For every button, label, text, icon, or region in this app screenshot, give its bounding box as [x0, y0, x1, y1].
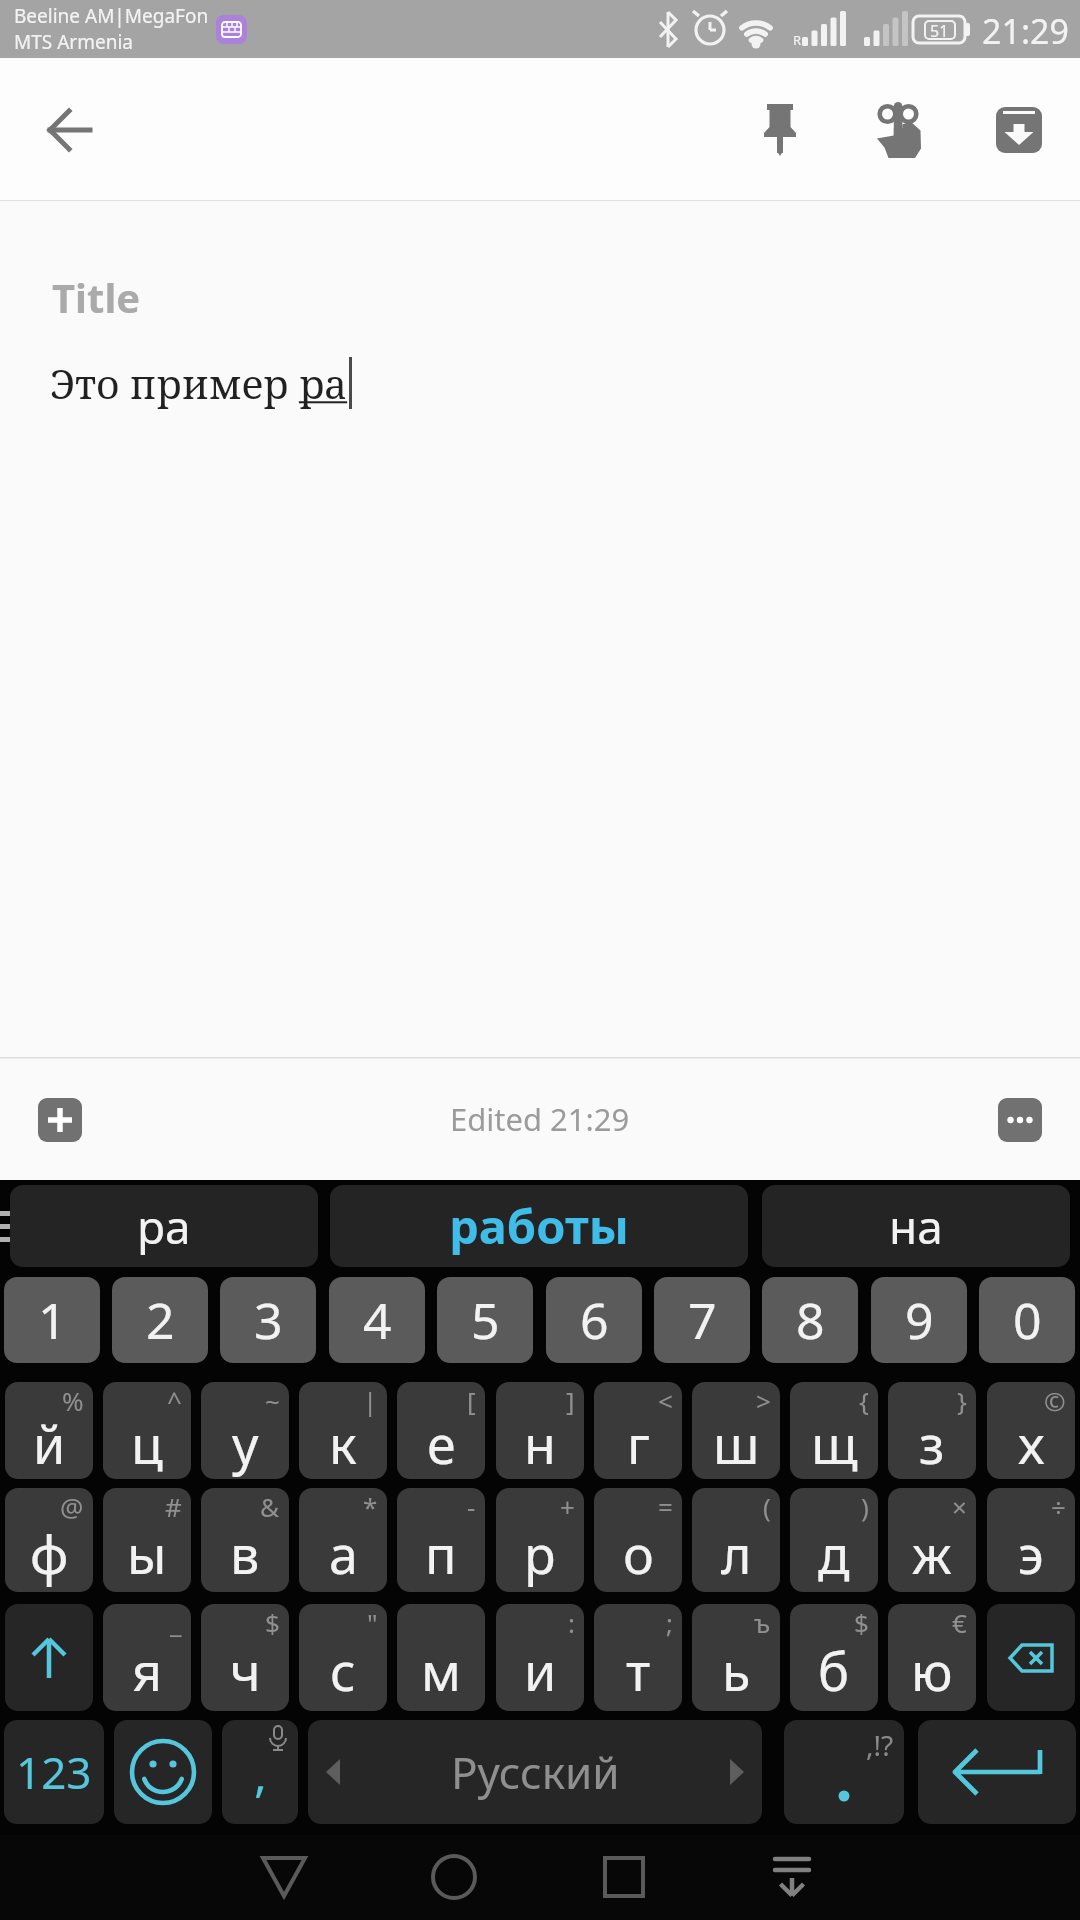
staticText: R	[793, 31, 802, 49]
button[interactable]: ×	[888, 1488, 976, 1592]
staticText: +	[560, 1489, 575, 1524]
staticText: 5	[471, 1286, 500, 1354]
staticText: с	[330, 1635, 356, 1706]
staticText: #	[165, 1489, 182, 1524]
staticText: ;	[666, 1605, 673, 1640]
button[interactable]: 9	[871, 1277, 967, 1363]
button[interactable]: 1	[4, 1277, 100, 1363]
staticText: ы	[127, 1518, 167, 1589]
button[interactable]: ъ	[692, 1604, 780, 1711]
staticText: э	[1018, 1518, 1044, 1589]
button[interactable]: работы	[330, 1185, 748, 1267]
button[interactable]	[748, 98, 812, 162]
button[interactable]: >	[692, 1382, 780, 1479]
button[interactable]: 6	[546, 1277, 642, 1363]
button[interactable]: $	[201, 1604, 289, 1711]
staticText: ю	[911, 1635, 953, 1706]
button[interactable]: &	[201, 1488, 289, 1592]
staticText: з	[919, 1408, 945, 1479]
staticText: 3	[254, 1286, 283, 1354]
button[interactable]: _	[103, 1604, 191, 1711]
button[interactable]: ;	[594, 1604, 682, 1711]
staticText: ×	[952, 1489, 967, 1524]
button[interactable]: -	[397, 1488, 485, 1592]
button[interactable]	[38, 1098, 82, 1142]
staticText: работы	[449, 1194, 629, 1258]
button[interactable]: 0	[979, 1277, 1075, 1363]
staticText: -	[467, 1489, 476, 1524]
staticText: б	[818, 1635, 850, 1706]
button[interactable]	[5, 1604, 93, 1711]
staticText: @	[60, 1489, 84, 1524]
staticText: ч	[230, 1635, 261, 1706]
staticText: }	[957, 1383, 967, 1418]
button[interactable]	[590, 1843, 658, 1911]
button[interactable]: 123	[4, 1720, 104, 1824]
staticText: м	[421, 1635, 461, 1706]
button[interactable]: ©	[987, 1382, 1075, 1479]
button[interactable]: <	[594, 1382, 682, 1479]
button[interactable]: [	[397, 1382, 485, 1479]
staticText: р	[524, 1518, 556, 1589]
staticText: Beeline AM|MegaFon	[14, 3, 209, 29]
button[interactable]	[758, 1843, 826, 1911]
staticText: <	[658, 1383, 673, 1418]
button[interactable]: +	[496, 1488, 584, 1592]
button[interactable]: (	[692, 1488, 780, 1592]
staticText: &	[260, 1489, 280, 1524]
staticText: д	[818, 1518, 850, 1589]
button[interactable]: #	[103, 1488, 191, 1592]
button[interactable]: ]	[496, 1382, 584, 1479]
button[interactable]	[250, 1843, 318, 1911]
staticText: 2	[146, 1286, 175, 1354]
button[interactable]: 3	[220, 1277, 316, 1363]
button[interactable]: €	[888, 1604, 976, 1711]
button[interactable]	[918, 1720, 1076, 1824]
button[interactable]: ^	[103, 1382, 191, 1479]
staticText: ш	[713, 1408, 760, 1479]
button[interactable]	[998, 1098, 1042, 1142]
button[interactable]: %	[5, 1382, 93, 1479]
button[interactable]: м	[397, 1604, 485, 1711]
button[interactable]	[38, 98, 102, 162]
button[interactable]: ра	[10, 1185, 318, 1267]
button[interactable]: *	[299, 1488, 387, 1592]
staticText: 6	[580, 1286, 609, 1354]
button[interactable]: }	[888, 1382, 976, 1479]
button[interactable]: 5	[437, 1277, 533, 1363]
button[interactable]	[114, 1720, 212, 1824]
button[interactable]	[987, 98, 1051, 162]
button[interactable]: ~	[201, 1382, 289, 1479]
button[interactable]: :	[496, 1604, 584, 1711]
button[interactable]: 7	[654, 1277, 750, 1363]
button[interactable]	[420, 1843, 488, 1911]
staticText: 21:29	[982, 8, 1069, 54]
button[interactable]: $	[790, 1604, 878, 1711]
button[interactable]: Русский	[308, 1720, 762, 1824]
button[interactable]: |	[299, 1382, 387, 1479]
button[interactable]: ,!?	[784, 1720, 904, 1824]
button[interactable]: )	[790, 1488, 878, 1592]
staticText: Title	[52, 270, 141, 324]
button[interactable]: 8	[762, 1277, 858, 1363]
button[interactable]: @	[5, 1488, 93, 1592]
button[interactable]: {	[790, 1382, 878, 1479]
staticText: $	[265, 1605, 280, 1640]
button[interactable]: 2	[112, 1277, 208, 1363]
staticText: Русский	[451, 1742, 620, 1802]
button[interactable]: на	[762, 1185, 1070, 1267]
staticText: г	[627, 1408, 650, 1479]
staticText: $	[854, 1605, 869, 1640]
staticText: [	[467, 1383, 476, 1418]
button[interactable]: ÷	[987, 1488, 1075, 1592]
button[interactable]: =	[594, 1488, 682, 1592]
button[interactable]: 4	[329, 1277, 425, 1363]
staticText: я	[132, 1635, 163, 1706]
staticText: ~	[265, 1383, 280, 1418]
button[interactable]	[987, 1604, 1075, 1711]
button[interactable]	[866, 98, 930, 162]
staticText: и	[524, 1635, 557, 1706]
staticText: Edited 21:29	[450, 1098, 630, 1140]
button[interactable]: ,	[222, 1720, 298, 1824]
button[interactable]: "	[299, 1604, 387, 1711]
